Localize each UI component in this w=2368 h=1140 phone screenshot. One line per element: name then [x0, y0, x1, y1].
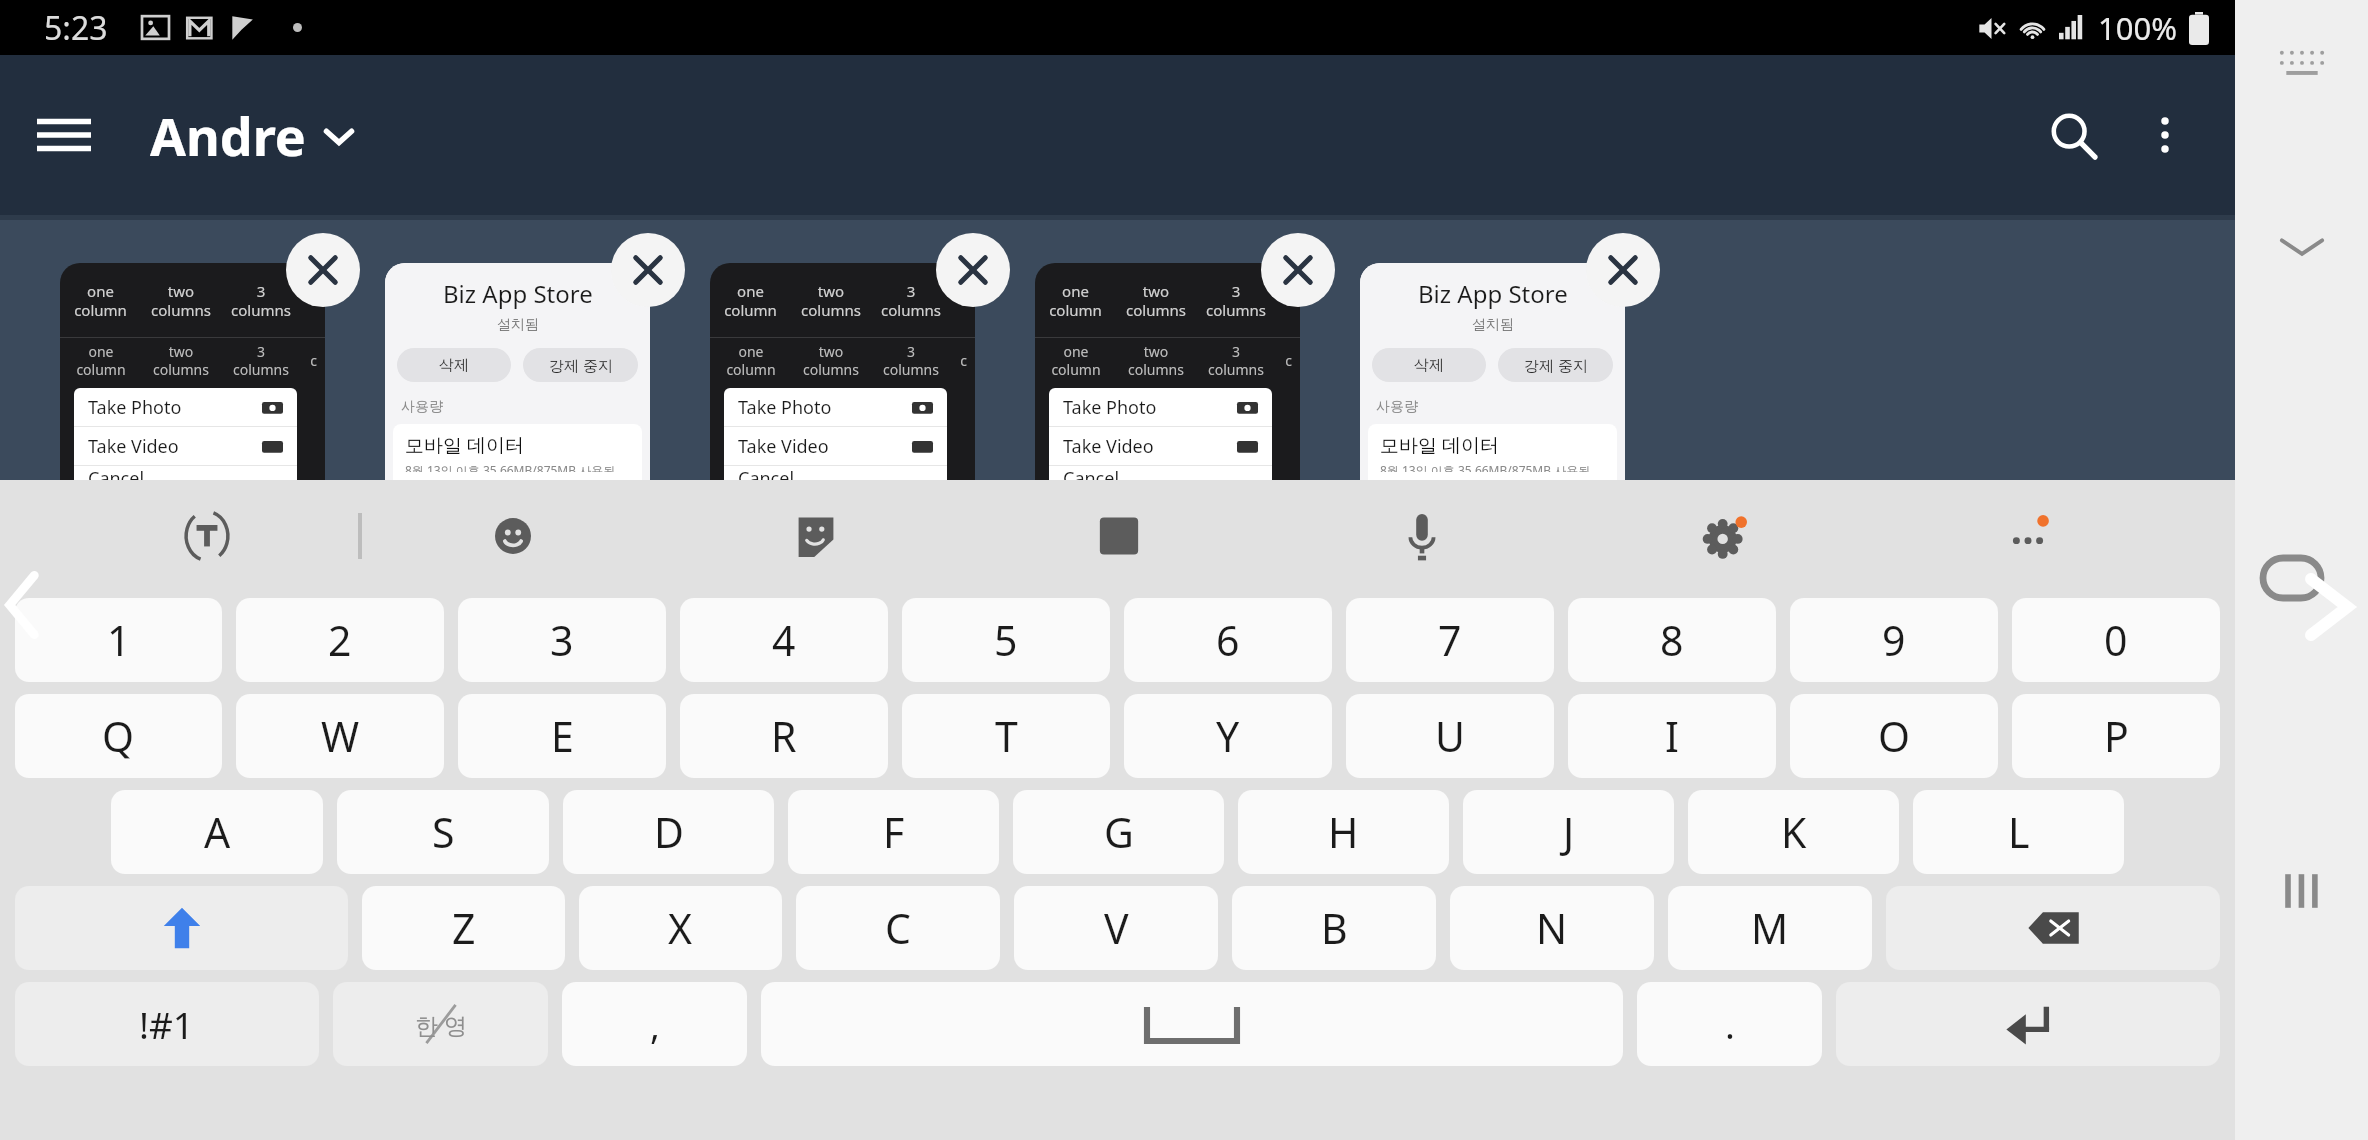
staticText: 3 columns [1206, 281, 1266, 320]
button[interactable]: Open navigation menu [20, 91, 108, 179]
staticText: 설치됨 [497, 316, 539, 334]
button[interactable]: Andre [140, 92, 364, 179]
button[interactable]: Show keyboard [2256, 18, 2348, 110]
staticText: Andre [150, 100, 306, 171]
button[interactable]: T [902, 694, 1110, 778]
button[interactable]: A [111, 790, 323, 874]
button[interactable]: I [1568, 694, 1776, 778]
button[interactable]: , [562, 982, 747, 1066]
button[interactable]: K [1688, 790, 1899, 874]
button[interactable]: Close app [1261, 233, 1335, 307]
button[interactable]: 강제 중지 [523, 348, 638, 382]
button[interactable]: 4 [680, 598, 888, 682]
button[interactable]: More options [2119, 89, 2211, 181]
button[interactable]: P [2012, 694, 2220, 778]
staticText: 모바일 데이터 [405, 432, 524, 458]
button[interactable]: E [458, 694, 666, 778]
button[interactable]: Home [2244, 530, 2340, 626]
button[interactable]: 5 [902, 598, 1110, 682]
button[interactable]: one column [710, 263, 975, 480]
button[interactable]: X [579, 886, 782, 970]
staticText: A [204, 804, 231, 860]
other: Back [0, 566, 44, 644]
button[interactable]: 6 [1124, 598, 1332, 682]
button[interactable]: F [788, 790, 999, 874]
button[interactable]: Switch language [333, 982, 548, 1066]
button[interactable]: Biz App Store [1360, 263, 1625, 480]
button[interactable]: Space [761, 982, 1623, 1066]
button[interactable]: 8 [1568, 598, 1776, 682]
staticText: 삭제 [439, 356, 469, 375]
button[interactable]: !#1 [15, 982, 319, 1066]
button[interactable]: Enter [1836, 982, 2220, 1066]
button[interactable]: L [1913, 790, 2124, 874]
button[interactable]: Z [362, 886, 565, 970]
button[interactable]: . [1637, 982, 1822, 1066]
button[interactable]: Close app [936, 233, 1010, 307]
button[interactable]: W [236, 694, 444, 778]
button[interactable]: 3 [458, 598, 666, 682]
button[interactable]: Emoji [362, 480, 664, 592]
button[interactable]: Biz App Store [385, 263, 650, 480]
button[interactable]: Backspace [1886, 886, 2220, 970]
button[interactable]: one column [60, 263, 325, 480]
staticText: Biz App Store [443, 277, 593, 310]
button[interactable]: 0 [2012, 598, 2220, 682]
button[interactable]: Keyboard settings [1573, 480, 1876, 592]
staticText: one column [726, 342, 776, 379]
button[interactable]: 7 [1346, 598, 1554, 682]
button[interactable]: Close app [611, 233, 685, 307]
button[interactable]: G [1013, 790, 1224, 874]
button[interactable]: H [1238, 790, 1449, 874]
staticText: Take Photo [738, 395, 832, 420]
button[interactable]: V [1014, 886, 1218, 970]
button[interactable]: D [563, 790, 774, 874]
button[interactable]: N [1450, 886, 1654, 970]
button[interactable]: Q [15, 694, 222, 778]
button[interactable]: Text edit mode [56, 480, 358, 592]
staticText: Q [102, 708, 135, 764]
staticText: one column [74, 281, 127, 320]
button[interactable]: Shift [15, 886, 348, 970]
button[interactable]: 삭제 [1372, 348, 1486, 382]
button[interactable]: M [1668, 886, 1872, 970]
staticText: O [1878, 708, 1911, 764]
button[interactable]: GIF [967, 480, 1270, 592]
staticText: 한 영 [415, 1009, 467, 1040]
button[interactable]: Y [1124, 694, 1332, 778]
button[interactable]: Stickers [664, 480, 967, 592]
staticText: 8 [1660, 612, 1684, 668]
button[interactable]: Close app [286, 233, 360, 307]
button[interactable]: Search [2027, 89, 2119, 181]
button[interactable]: Recent apps [2256, 845, 2348, 937]
button[interactable]: 9 [1790, 598, 1998, 682]
staticText: Take Video [1063, 434, 1154, 459]
staticText: T [995, 708, 1018, 764]
staticText: Biz App Store [1418, 277, 1568, 310]
staticText: two columns [801, 281, 861, 320]
button[interactable]: one column [1035, 263, 1300, 480]
button[interactable]: Voice input [1270, 480, 1573, 592]
staticText: F [883, 804, 905, 860]
staticText: 모바일 데이터 [1380, 432, 1499, 458]
staticText: U [1435, 708, 1465, 764]
button[interactable]: U [1346, 694, 1554, 778]
button[interactable]: C [796, 886, 1000, 970]
button[interactable]: J [1463, 790, 1674, 874]
button[interactable]: 2 [236, 598, 444, 682]
staticText: two columns [803, 342, 859, 379]
button[interactable]: Close app [1586, 233, 1660, 307]
button[interactable]: R [680, 694, 888, 778]
button[interactable]: 1 [15, 598, 222, 682]
button[interactable]: More options [1876, 480, 2179, 592]
button[interactable]: O [1790, 694, 1998, 778]
staticText: c [1285, 351, 1292, 370]
button[interactable]: Hide keyboard [2256, 200, 2348, 292]
staticText: !#1 [139, 999, 195, 1049]
staticText: c [959, 290, 967, 310]
button[interactable]: S [337, 790, 549, 874]
button[interactable]: 강제 중지 [1498, 348, 1613, 382]
button[interactable]: 삭제 [397, 348, 511, 382]
button[interactable]: B [1232, 886, 1436, 970]
staticText: 7 [1438, 612, 1462, 668]
